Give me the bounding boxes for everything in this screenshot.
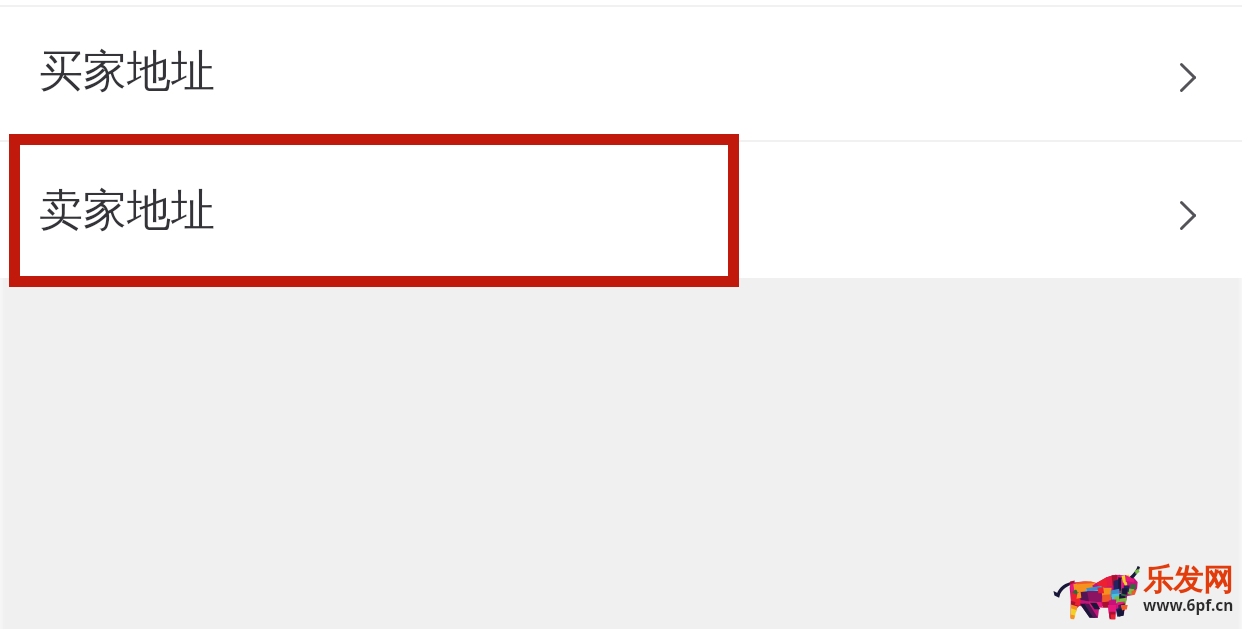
staticText: 乐发网 — [1143, 561, 1233, 599]
button[interactable]: 卖家地址 — [0, 142, 1242, 278]
staticText: 买家地址 — [39, 44, 215, 99]
staticText: 卖家地址 — [39, 183, 215, 238]
other: Open 卖家地址 — [1169, 193, 1207, 237]
other: Open 买家地址 — [1169, 55, 1207, 99]
button[interactable]: 买家地址 — [0, 7, 1242, 140]
staticText: www.6pf.cn — [1143, 594, 1234, 615]
